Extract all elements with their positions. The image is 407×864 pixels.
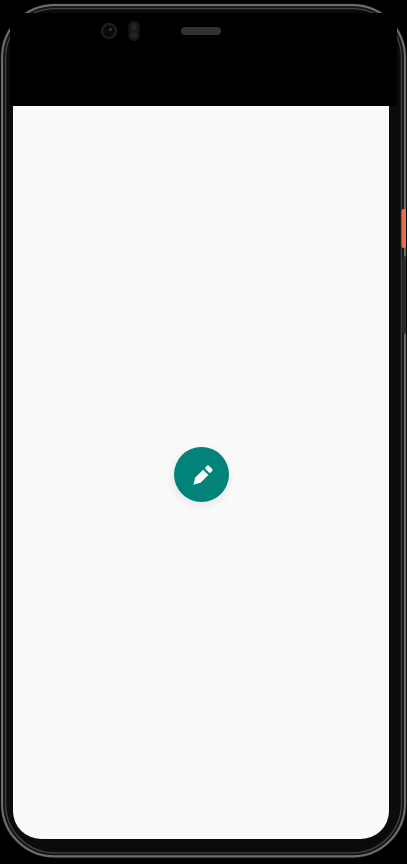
- button[interactable]: [174, 447, 229, 502]
